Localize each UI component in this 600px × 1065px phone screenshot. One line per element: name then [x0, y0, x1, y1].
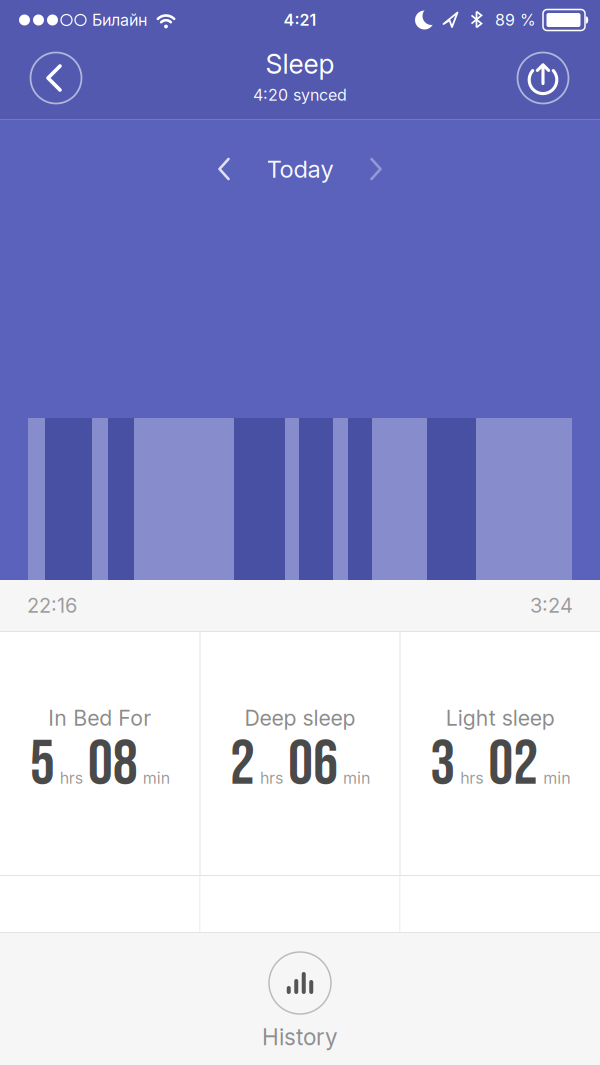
staticText: hrs: [460, 768, 483, 787]
staticText: 3: [430, 727, 455, 803]
staticText: hrs: [60, 768, 83, 787]
staticText: 02: [488, 727, 538, 803]
staticText: History: [262, 1024, 338, 1050]
staticText: 4:21: [283, 11, 316, 29]
staticText: min: [343, 768, 370, 787]
staticText: Билайн: [92, 11, 147, 29]
staticText: 22:16: [27, 594, 77, 617]
staticText: Sleep: [265, 48, 334, 80]
staticText: In Bed For: [48, 705, 151, 731]
staticText: 08: [88, 727, 138, 803]
staticText: Deep sleep: [244, 705, 355, 731]
staticText: min: [143, 768, 170, 787]
staticText: 2: [230, 727, 255, 803]
staticText: min: [543, 768, 570, 787]
staticText: hrs: [260, 768, 283, 787]
staticText: 89 %: [495, 11, 536, 29]
staticText: 06: [288, 727, 338, 803]
staticText: Today: [266, 155, 333, 183]
staticText: 3:24: [530, 594, 573, 617]
staticText: 5: [30, 727, 55, 803]
staticText: 4:20 synced: [253, 86, 347, 104]
staticText: Light sleep: [446, 705, 555, 731]
